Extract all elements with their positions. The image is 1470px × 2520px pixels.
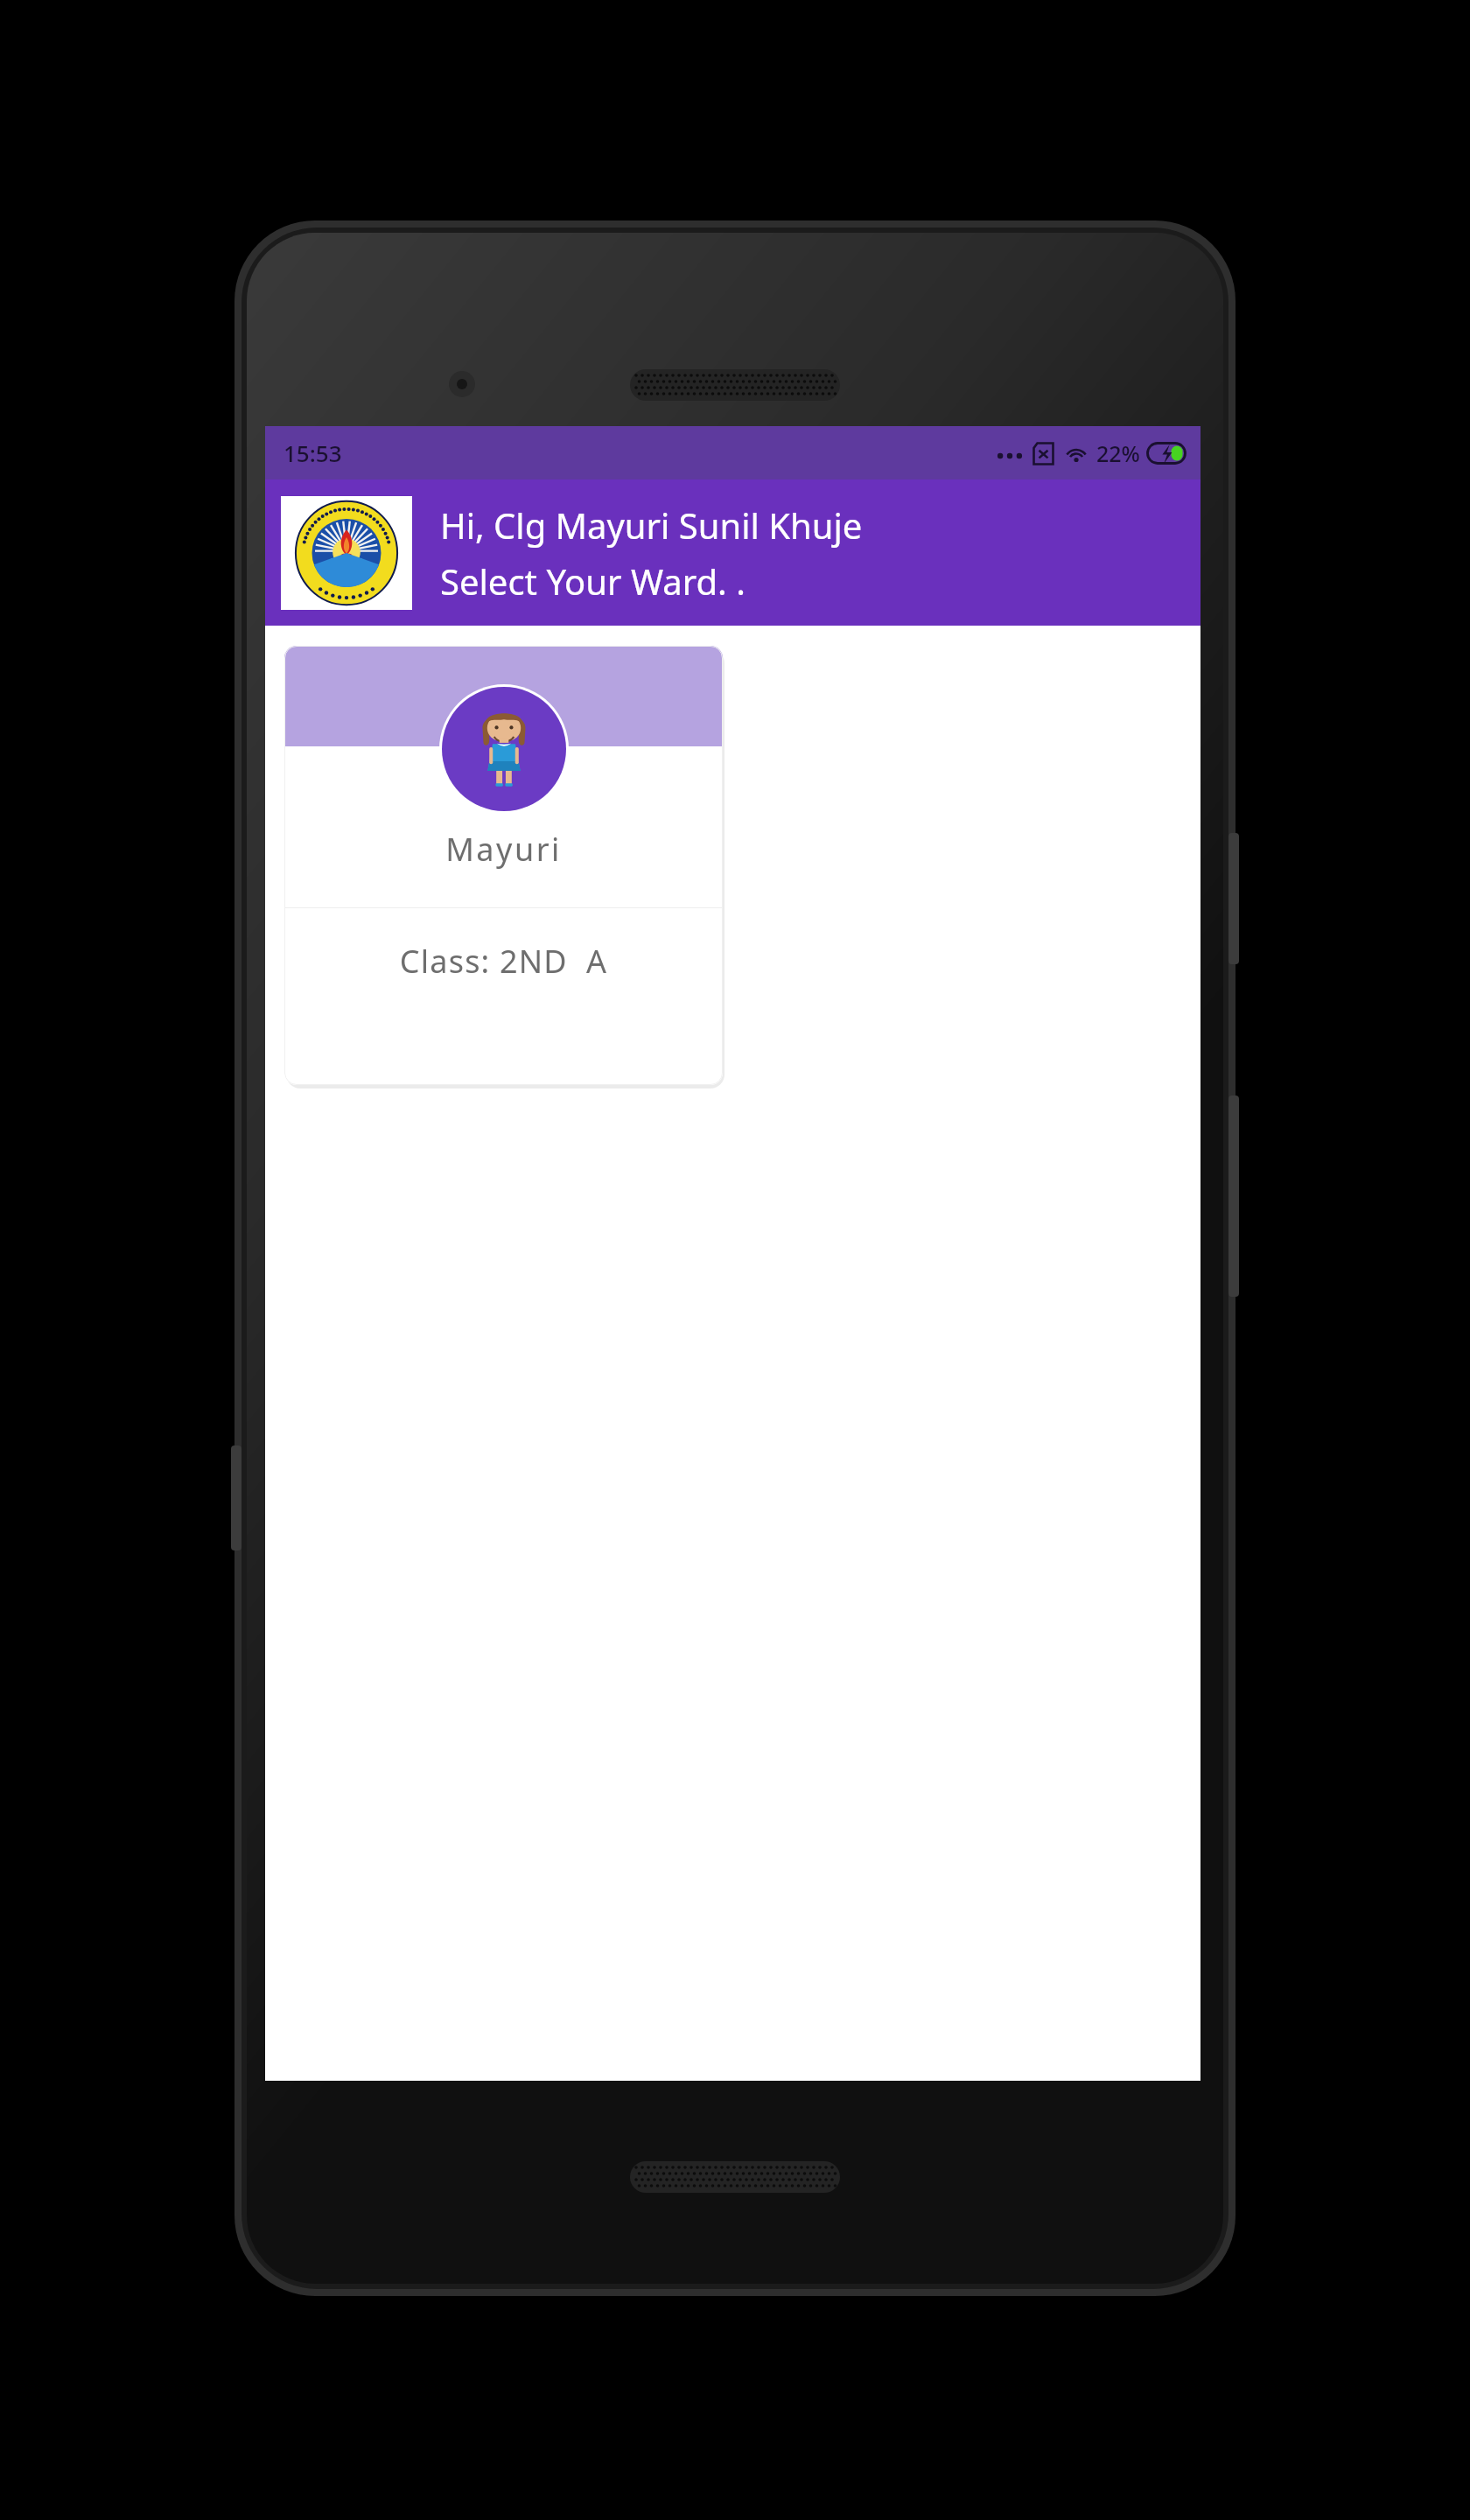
staticText: Select Your Ward. . bbox=[440, 557, 745, 605]
button[interactable]: School logo bbox=[281, 496, 412, 610]
staticText: Class: 2ND A bbox=[284, 940, 723, 983]
staticText: Hi, Clg Mayuri Sunil Khuje bbox=[440, 501, 863, 549]
staticText: 22% bbox=[1096, 438, 1140, 468]
staticText: Mayuri bbox=[284, 828, 723, 871]
staticText: 15:53 bbox=[283, 437, 342, 468]
button[interactable]: Mayuri bbox=[284, 646, 723, 1085]
